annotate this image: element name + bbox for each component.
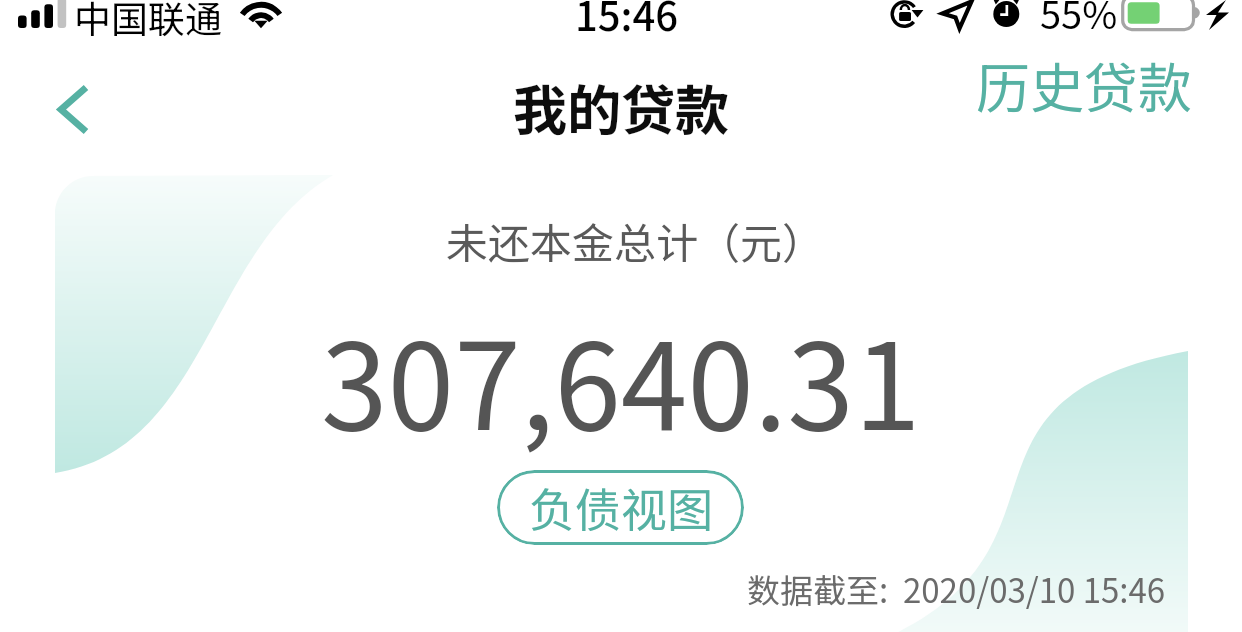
staticText: 数据截至: 2020/03/10 15:46 [747, 565, 1166, 613]
staticText: 我的贷款 [513, 67, 729, 145]
staticText: 15:46 [575, 0, 679, 43]
button[interactable]: Back [30, 72, 106, 148]
staticText: 307,640.31 [321, 291, 921, 465]
staticText: 历史贷款 [976, 45, 1192, 123]
staticText: 未还本金总计（元） [446, 210, 825, 271]
staticText: 中国联通 [74, 0, 222, 44]
button[interactable]: 负债视图 [497, 470, 744, 545]
staticText: 负债视图 [529, 474, 713, 541]
staticText: 55% [1040, 0, 1118, 40]
button[interactable]: 历史贷款 [964, 33, 1206, 123]
